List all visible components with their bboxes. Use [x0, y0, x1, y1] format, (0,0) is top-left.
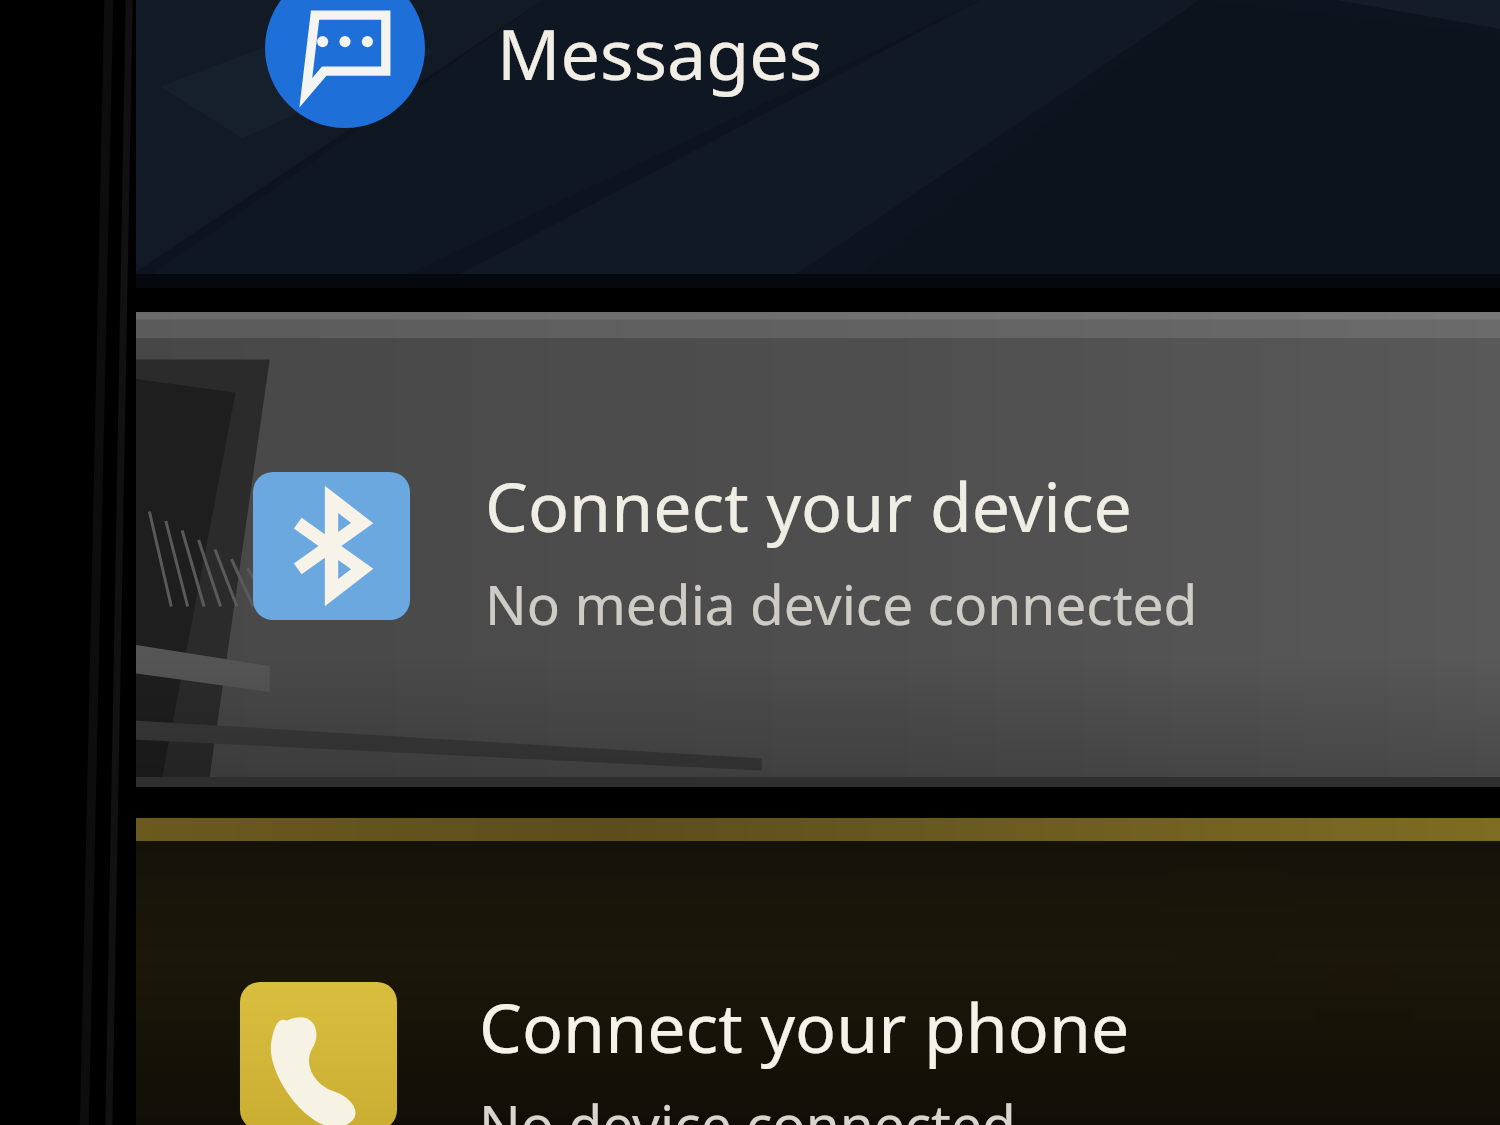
button[interactable]: Bluetooth	[133, 312, 1500, 787]
staticText: No media device connected	[485, 566, 1198, 641]
button[interactable]: Phone	[240, 982, 397, 1125]
button[interactable]: Messages	[133, 0, 1500, 288]
button[interactable]: Messages	[265, 0, 425, 128]
staticText: Connect your device	[485, 459, 1132, 552]
staticText: No device connected	[479, 1086, 1016, 1125]
staticText: Messages	[497, 5, 823, 100]
staticText: Connect your phone	[479, 980, 1130, 1073]
button[interactable]: Phone	[133, 818, 1500, 1125]
button[interactable]: Bluetooth	[253, 472, 410, 620]
